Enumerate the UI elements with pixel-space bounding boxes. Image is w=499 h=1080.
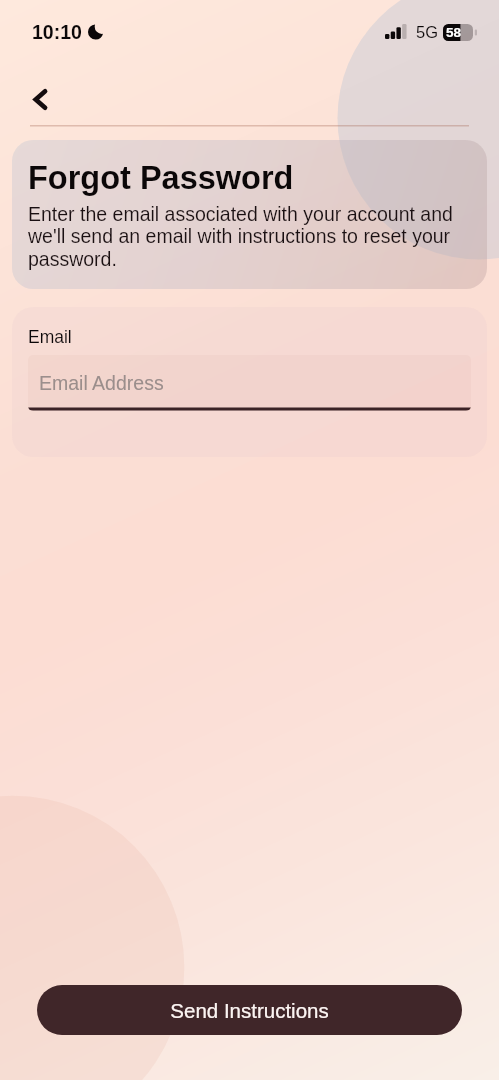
staticText: Forgot Password — [28, 160, 294, 196]
staticText: Send Instructions — [170, 999, 329, 1022]
staticText: Email Address — [39, 372, 164, 394]
staticText: Enter the email associated with your acc… — [28, 203, 471, 270]
staticText: 10:10 — [32, 21, 82, 43]
staticText: 58 — [446, 25, 462, 40]
staticText: Email — [28, 327, 72, 347]
button[interactable]: Back — [21, 80, 59, 118]
button[interactable]: Email Address — [28, 355, 471, 411]
button[interactable]: Send Instructions — [37, 985, 462, 1035]
staticText: 5G — [416, 23, 439, 41]
